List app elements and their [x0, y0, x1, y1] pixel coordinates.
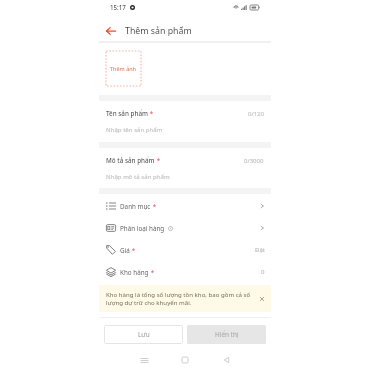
staticText: Danh mục	[120, 202, 151, 211]
button[interactable]: Danh mục	[99, 195, 271, 217]
button[interactable]: Đóng	[257, 294, 266, 303]
staticText: Thêm sản phẩm	[125, 25, 192, 37]
staticText: *	[155, 156, 161, 165]
staticText: *	[151, 202, 157, 211]
staticText: Nhập tên sản phẩm	[106, 125, 163, 133]
button[interactable]: Thêm ảnh	[106, 51, 141, 86]
button[interactable]: Recents	[136, 352, 152, 368]
staticText: Giá	[120, 246, 130, 255]
button[interactable]: Back	[218, 352, 234, 368]
staticText: Lưu	[138, 330, 150, 339]
staticText: Mô tả sản phẩm	[106, 156, 155, 165]
button[interactable]: Back	[103, 23, 119, 39]
button[interactable]: Hiển thị	[187, 325, 266, 344]
button[interactable]: Lưu	[104, 325, 183, 344]
staticText: Nhập mô tả sản phẩm	[106, 172, 170, 180]
staticText: 0/120	[248, 110, 264, 118]
button[interactable]: Kho hàng	[99, 261, 271, 283]
staticText: Đặt	[255, 246, 265, 254]
staticText: Hiển thị	[215, 330, 239, 339]
button[interactable]: Home	[177, 352, 193, 368]
staticText: Tên sản phẩm	[106, 109, 148, 118]
staticText: Phân loại hàng	[120, 224, 165, 233]
staticText: *	[149, 268, 155, 277]
staticText: Thêm ảnh	[110, 65, 137, 72]
staticText: Kho hàng là tổng số lượng tồn kho, bao g…	[106, 290, 254, 307]
button[interactable]: Phân loại hàng	[99, 217, 271, 239]
staticText: 15:17	[110, 3, 126, 11]
staticText: 0	[261, 268, 265, 276]
button[interactable]: Giá	[99, 239, 271, 261]
staticText: Kho hàng	[120, 268, 149, 277]
staticText: 0/3000	[244, 157, 264, 165]
staticText: *	[148, 109, 154, 118]
staticText: *	[130, 246, 136, 255]
